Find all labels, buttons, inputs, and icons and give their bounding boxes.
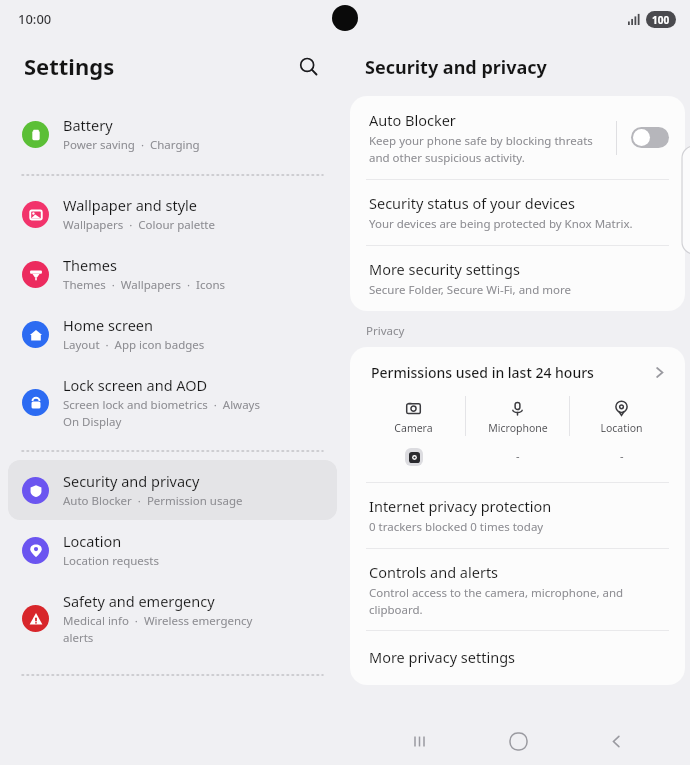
- staticText: Screen lock and biometrics · Always On D…: [63, 397, 278, 429]
- staticText: Security and privacy: [365, 55, 547, 80]
- staticText: Control access to the camera, microphone…: [369, 585, 639, 617]
- staticText: Location: [600, 421, 643, 435]
- staticText: 100: [652, 13, 670, 27]
- staticText: Themes · Wallpapers · Icons: [63, 277, 278, 293]
- staticText: Permissions used in last 24 hours: [371, 363, 652, 382]
- button[interactable]: Internet privacy protection: [350, 483, 685, 548]
- button[interactable]: Battery: [8, 104, 337, 164]
- staticText: Keep your phone safe by blocking threats…: [369, 133, 597, 165]
- button[interactable]: More privacy settings: [350, 631, 685, 685]
- staticText: Wallpapers · Colour palette: [63, 217, 278, 233]
- button[interactable]: Wallpaper and style: [8, 184, 337, 244]
- button[interactable]: Recents: [395, 717, 443, 765]
- staticText: 10:00: [18, 10, 52, 28]
- staticText: Home screen: [63, 315, 153, 335]
- staticText: Lock screen and AOD: [63, 375, 208, 395]
- staticText: Controls and alerts: [369, 562, 499, 582]
- staticText: 0 trackers blocked 0 times today: [369, 519, 544, 535]
- staticText: -: [516, 448, 520, 463]
- staticText: -: [620, 448, 624, 463]
- staticText: Auto Blocker · Permission usage: [63, 493, 278, 509]
- staticText: Location: [63, 531, 122, 551]
- staticText: Security and privacy: [63, 471, 200, 491]
- staticText: Location requests: [63, 553, 278, 569]
- button[interactable]: Auto Blocker: [350, 96, 685, 179]
- button[interactable]: Auto Blocker toggle: [631, 127, 669, 148]
- button[interactable]: Camera: [362, 396, 465, 470]
- staticText: Secure Folder, Secure Wi-Fi, and more: [369, 282, 571, 298]
- button[interactable]: Search: [291, 49, 325, 83]
- button[interactable]: Permissions used in last 24 hours: [350, 347, 685, 396]
- staticText: Security status of your devices: [369, 193, 575, 213]
- button[interactable]: Safety and emergency: [8, 580, 337, 656]
- staticText: Battery: [63, 115, 113, 135]
- button[interactable]: Microphone: [466, 396, 569, 467]
- staticText: More privacy settings: [369, 647, 515, 667]
- staticText: Wallpaper and style: [63, 195, 197, 215]
- staticText: Settings: [24, 51, 115, 81]
- staticText: Microphone: [488, 421, 548, 435]
- staticText: Privacy: [366, 323, 405, 339]
- staticText: Safety and emergency: [63, 591, 215, 611]
- button[interactable]: Security and privacy: [8, 460, 337, 520]
- button[interactable]: Location: [570, 396, 673, 467]
- staticText: More security settings: [369, 259, 520, 279]
- button[interactable]: Themes: [8, 244, 337, 304]
- staticText: Medical info · Wireless emergency alerts: [63, 613, 278, 645]
- button[interactable]: More security settings: [350, 246, 685, 311]
- button[interactable]: Security status of your devices: [350, 180, 685, 245]
- staticText: Layout · App icon badges: [63, 337, 278, 353]
- button[interactable]: Controls and alerts: [350, 549, 685, 630]
- staticText: Themes: [63, 255, 117, 275]
- staticText: Camera: [394, 421, 433, 435]
- button[interactable]: Lock screen and AOD: [8, 364, 337, 440]
- button[interactable]: Home: [494, 717, 542, 765]
- button[interactable]: Location: [8, 520, 337, 580]
- staticText: Internet privacy protection: [369, 496, 552, 516]
- staticText: Auto Blocker: [369, 110, 456, 130]
- button[interactable]: Home screen: [8, 304, 337, 364]
- staticText: Your devices are being protected by Knox…: [369, 216, 633, 232]
- staticText: Power saving · Charging: [63, 137, 278, 153]
- button[interactable]: Back: [592, 717, 640, 765]
